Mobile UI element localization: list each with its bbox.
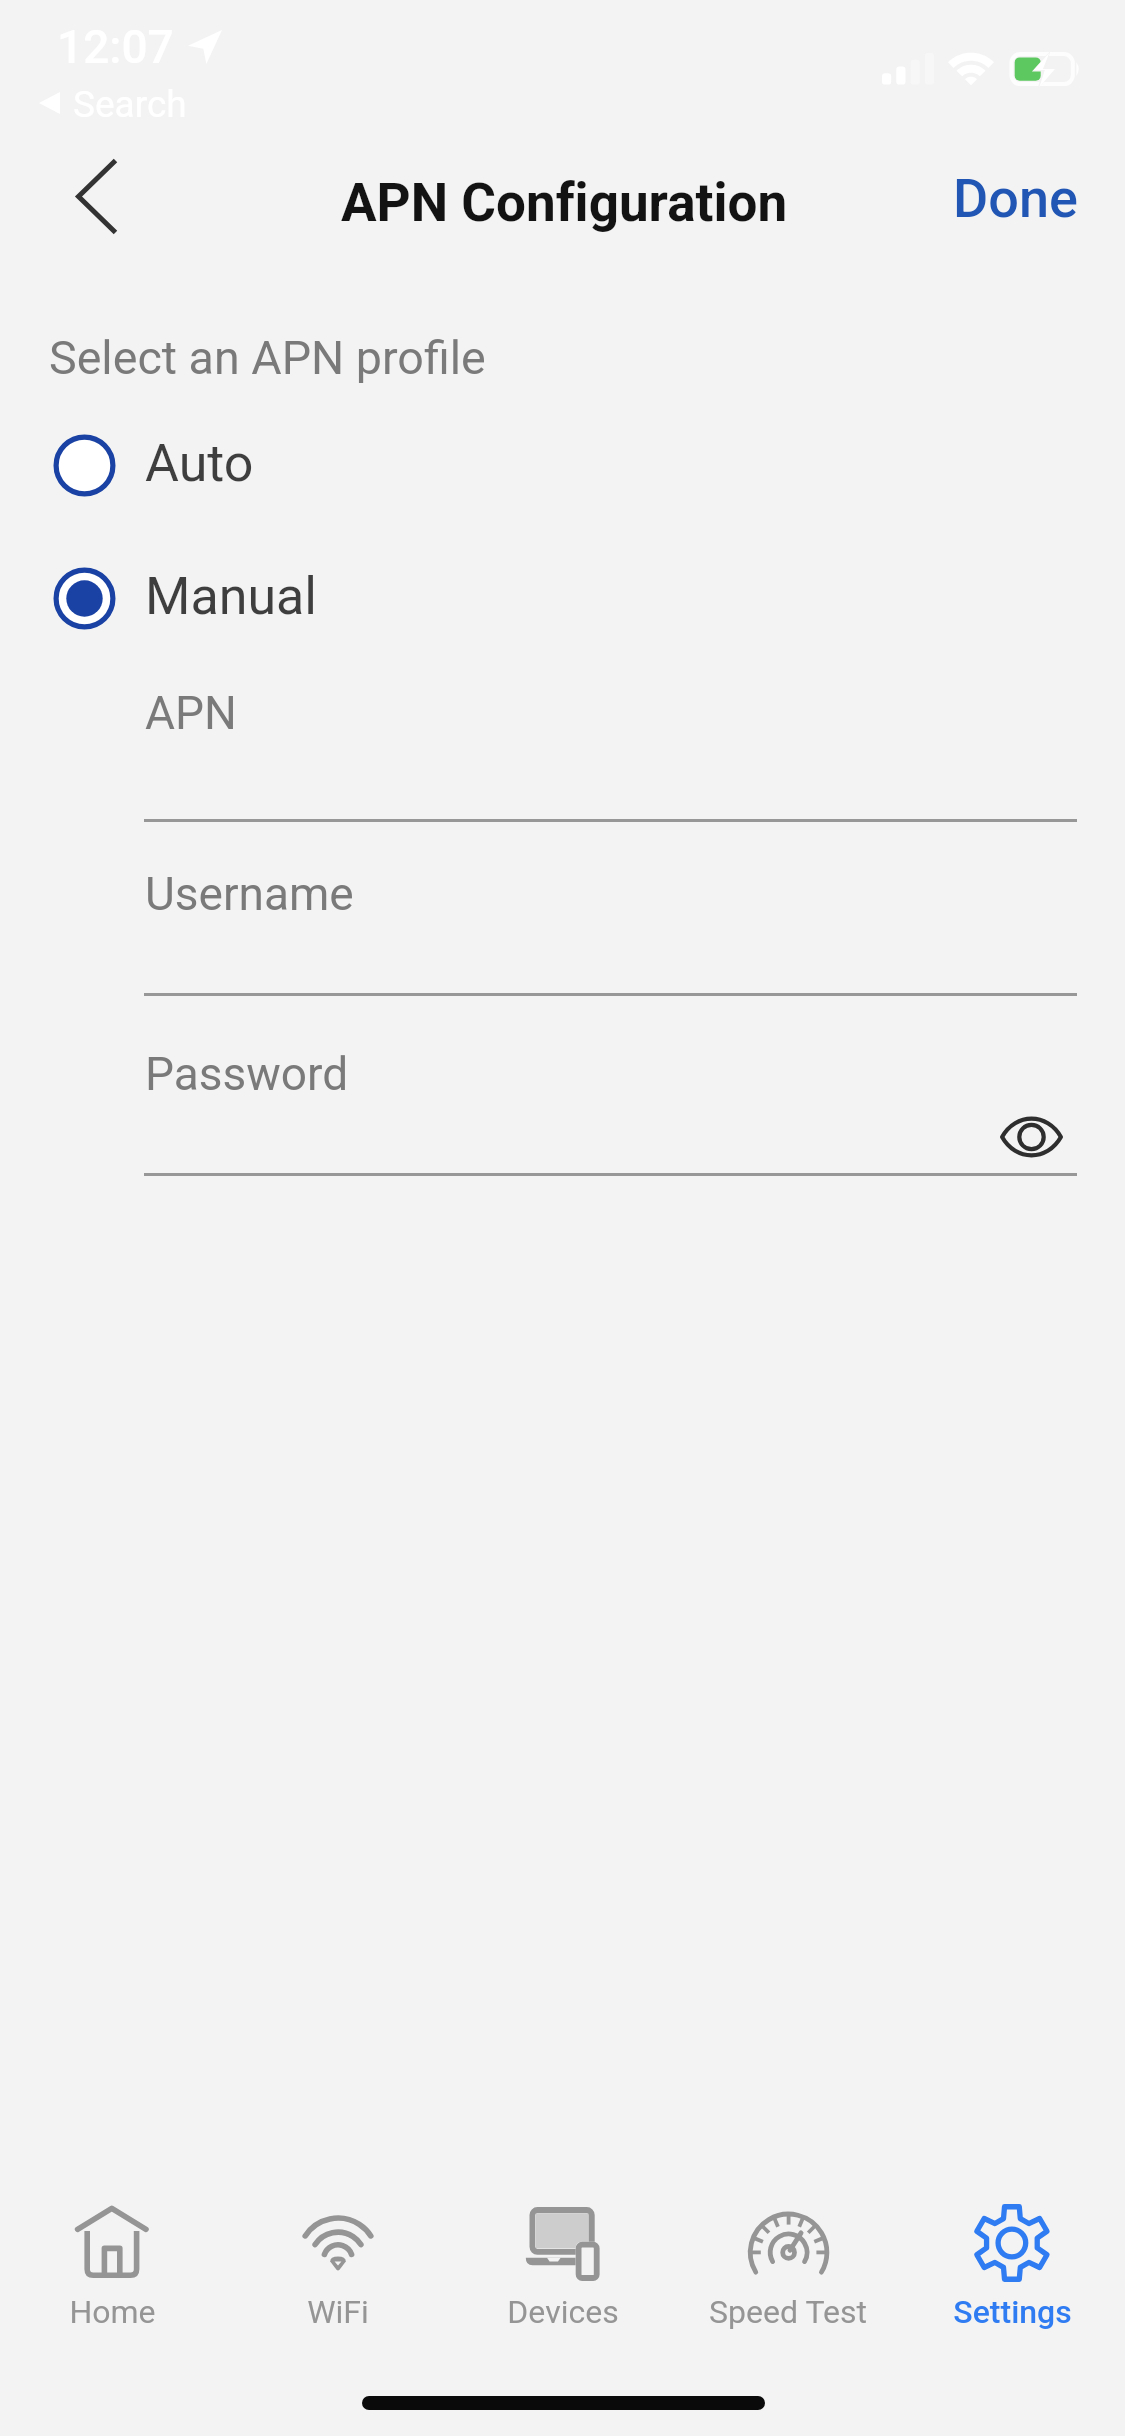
staticText: Username: [145, 867, 354, 921]
button[interactable]: Auto: [0, 417, 1125, 513]
staticText: Password: [145, 1047, 349, 1101]
button[interactable]: Home: [0, 2195, 225, 2331]
staticText: 12:07: [57, 20, 174, 74]
staticText: Devices: [507, 2293, 619, 2331]
button[interactable]: Devices: [450, 2195, 675, 2331]
other: Show password: [981, 1087, 1081, 1187]
button[interactable]: Username: [0, 867, 1125, 999]
staticText: Speed Test: [709, 2293, 867, 2331]
button[interactable]: Manual: [0, 550, 1125, 646]
staticText: Settings: [953, 2293, 1072, 2331]
button[interactable]: APN: [0, 686, 1125, 825]
button[interactable]: Settings: [900, 2195, 1125, 2331]
button[interactable]: Password: [0, 1047, 1125, 1179]
staticText: APN: [145, 686, 237, 740]
staticText: Select an APN profile: [49, 331, 486, 386]
staticText: Manual: [145, 566, 317, 627]
staticText: Done: [953, 167, 1078, 230]
staticText: WiFi: [307, 2293, 369, 2331]
staticText: Home: [69, 2293, 156, 2331]
button[interactable]: Done: [939, 155, 1092, 242]
staticText: APN Configuration: [341, 172, 788, 234]
button[interactable]: Back: [42, 141, 152, 251]
staticText: Search: [73, 83, 187, 126]
button[interactable]: WiFi: [225, 2195, 450, 2331]
staticText: Auto: [145, 433, 254, 494]
button[interactable]: Speed Test: [675, 2195, 900, 2331]
